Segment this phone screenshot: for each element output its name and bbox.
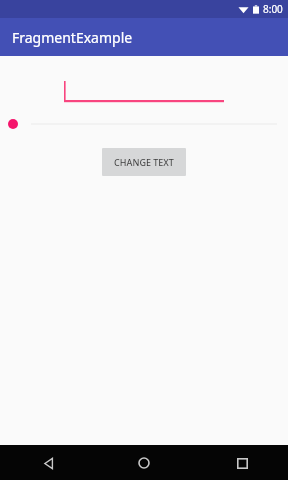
staticText: FragmentExample — [12, 28, 133, 47]
button[interactable]: Recent apps — [230, 451, 254, 475]
staticText: 8:00 — [263, 2, 283, 16]
button[interactable]: CHANGE TEXT — [102, 148, 186, 176]
button[interactable]: Home — [132, 451, 156, 475]
button[interactable] — [64, 81, 224, 103]
button[interactable]: Back — [36, 451, 60, 475]
staticText: CHANGE TEXT — [114, 156, 174, 168]
